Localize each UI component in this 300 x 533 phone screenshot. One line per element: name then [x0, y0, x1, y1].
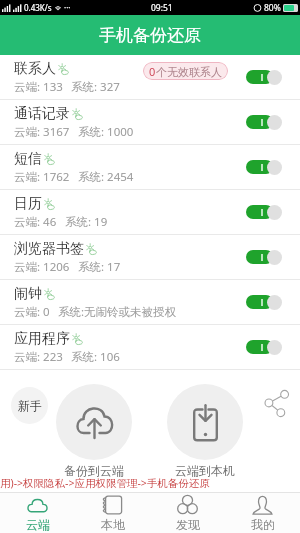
staticText: 系统: 19: [65, 214, 108, 230]
staticText: 日历: [14, 195, 42, 213]
staticText: 云端: 223: [14, 349, 63, 365]
button[interactable]: [56, 384, 132, 460]
staticText: 云端: 46: [14, 214, 57, 230]
staticText: 新手: [18, 398, 42, 413]
staticText: 0.43K/s: [24, 2, 52, 13]
staticText: 浏览器书签: [14, 240, 84, 258]
button[interactable]: [246, 204, 282, 220]
button[interactable]: 联系人: [0, 55, 300, 99]
staticText: 闹钟: [14, 285, 42, 303]
button[interactable]: 通话记录: [0, 100, 300, 144]
staticText: 我的: [251, 517, 275, 532]
staticText: 应用程序: [14, 330, 70, 348]
button[interactable]: [246, 294, 282, 310]
button[interactable]: [246, 249, 282, 265]
button[interactable]: [167, 384, 243, 460]
button[interactable]: 新手: [11, 387, 48, 424]
staticText: 0: [149, 64, 156, 79]
staticText: 联系人: [14, 60, 56, 78]
staticText: 备份到云端: [64, 463, 124, 478]
staticText: ···: [64, 2, 71, 13]
button[interactable]: Share: [263, 390, 290, 417]
button[interactable]: 我的: [225, 493, 300, 533]
staticText: 系统: 106: [71, 349, 120, 365]
button[interactable]: [246, 159, 282, 175]
staticText: 云端: 3167: [14, 124, 70, 140]
staticText: 云端: 1762: [14, 169, 70, 185]
button[interactable]: [246, 114, 282, 130]
staticText: 云端: 0: [14, 304, 50, 320]
staticText: 云端到本机: [175, 463, 235, 478]
staticText: 系统: 327: [71, 79, 120, 95]
staticText: 系统: 17: [78, 259, 121, 275]
staticText: 个无效联系人: [156, 65, 222, 79]
staticText: 系统:无闹铃或未被授权: [58, 304, 177, 320]
button[interactable]: 日历: [0, 190, 300, 234]
staticText: 系统: 2454: [78, 169, 134, 185]
button[interactable]: [246, 69, 282, 85]
staticText: 通话记录: [14, 105, 70, 123]
button[interactable]: [246, 339, 282, 355]
staticText: 短信: [14, 150, 42, 168]
button[interactable]: 云端: [0, 493, 75, 533]
staticText: 80%: [264, 2, 281, 14]
button[interactable]: 浏览器书签: [0, 235, 300, 279]
staticText: 云端: 1206: [14, 259, 70, 275]
button[interactable]: 本地: [75, 493, 150, 533]
button[interactable]: 发现: [150, 493, 225, 533]
button[interactable]: 0: [143, 62, 228, 80]
staticText: 手机备份还原: [99, 25, 201, 46]
staticText: 09:51: [151, 2, 173, 14]
staticText: 发现: [176, 517, 200, 532]
button[interactable]: 短信: [0, 145, 300, 189]
button[interactable]: 应用程序: [0, 325, 300, 369]
button[interactable]: 闹钟: [0, 280, 300, 324]
staticText: 云端: 133: [14, 79, 63, 95]
staticText: 云端: [26, 517, 50, 532]
staticText: 本地: [101, 517, 125, 532]
staticText: 用)->权限隐私->应用权限管理->手机备份还原: [0, 476, 210, 490]
staticText: 系统: 1000: [78, 124, 134, 140]
